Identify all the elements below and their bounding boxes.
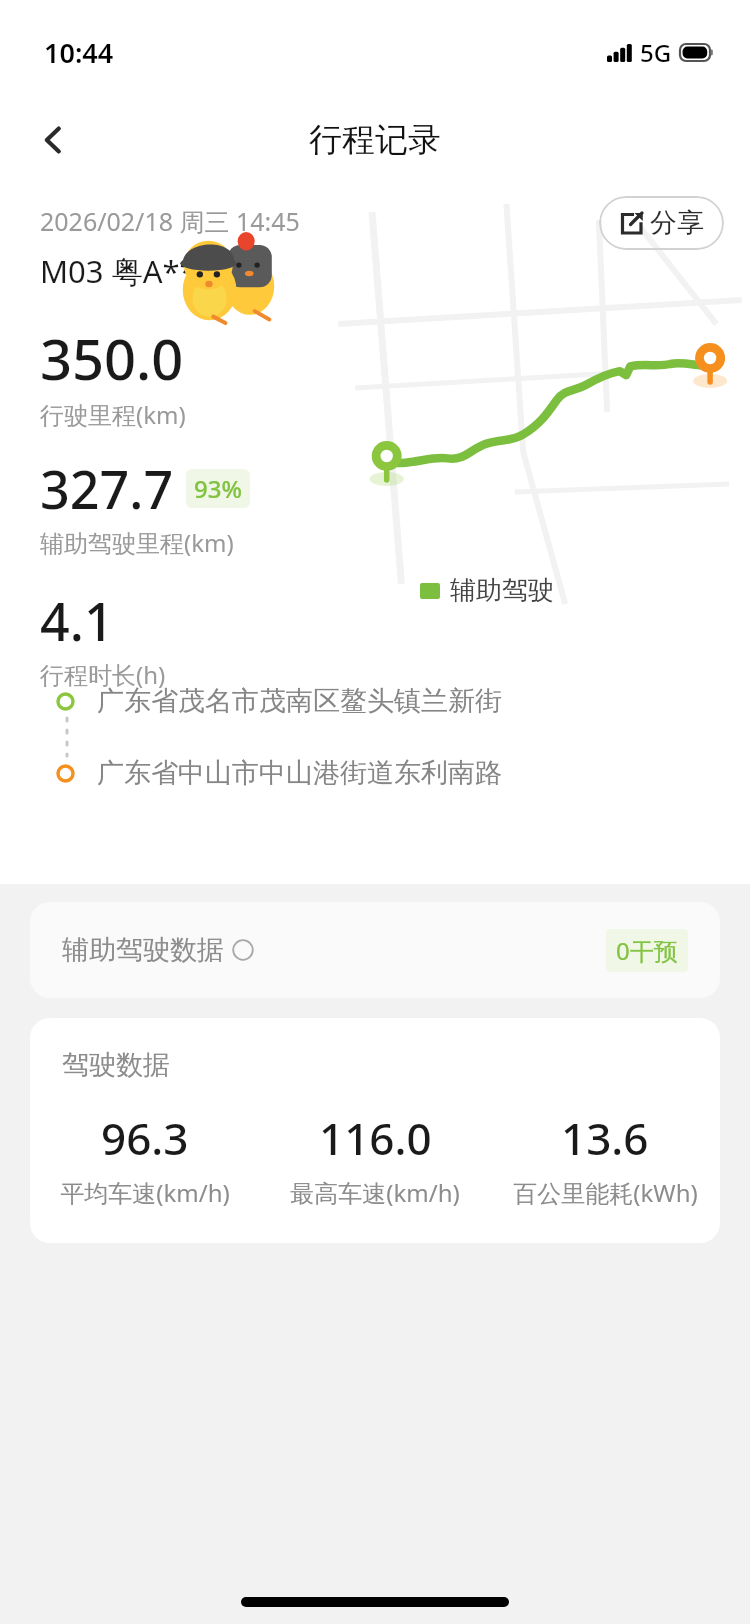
staticText: 10:44 (44, 34, 114, 71)
staticText: 广东省中山市中山港街道东利南路 (97, 756, 502, 790)
staticText: 350.0 (40, 320, 184, 396)
staticText: 93% (194, 472, 242, 505)
staticText: 辅助驾驶数据 (62, 933, 224, 967)
button[interactable]: Back (22, 108, 86, 172)
staticText: 百公里能耗(kWh) (513, 1176, 698, 1209)
staticText: 4.1 (40, 585, 114, 656)
staticText: 平均车速(km/h) (60, 1176, 230, 1209)
staticText: 13.6 (561, 1108, 649, 1168)
button[interactable]: 分享 (599, 196, 724, 250)
staticText: 分享 (650, 206, 704, 240)
staticText: 驾驶数据 (62, 1048, 170, 1082)
staticText: 行驶里程(km) (40, 398, 186, 431)
staticText: 广东省茂名市茂南区鳌头镇兰新街 (97, 684, 502, 718)
button[interactable]: 驾驶数据 (30, 1018, 720, 1243)
staticText: 0干预 (616, 934, 678, 967)
staticText: 行程时长(h) (40, 658, 166, 691)
staticText: 行程记录 (309, 119, 441, 161)
staticText: M03 粤A***6 (40, 250, 232, 292)
staticText: 116.0 (319, 1108, 432, 1168)
staticText: 2026/02/18 周三 14:45 (40, 204, 300, 238)
staticText: 327.7 (40, 453, 174, 524)
staticText: 96.3 (101, 1108, 189, 1168)
staticText: 辅助驾驶 (450, 574, 554, 607)
button[interactable]: 辅助驾驶数据 (30, 902, 720, 998)
staticText: 辅助驾驶里程(km) (40, 526, 234, 559)
staticText: 5G (640, 36, 672, 69)
staticText: 最高车速(km/h) (290, 1176, 460, 1209)
